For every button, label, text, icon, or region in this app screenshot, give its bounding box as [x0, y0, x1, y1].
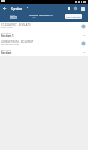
staticText: all	[83, 33, 86, 36]
staticText: LOREM IPSUM - DOLORSIT consectetur adip	[1, 40, 34, 46]
staticText: VIEW REPORT	[66, 15, 82, 18]
button[interactable]: sub head Section 1	[0, 30, 88, 39]
button[interactable]: More options	[79, 5, 86, 12]
button[interactable]: Navigate up	[0, 4, 9, 13]
button[interactable]: Refresh	[72, 5, 79, 12]
button[interactable]: LOREM IPSUM - DOLORSIT consectetur adip	[0, 39, 88, 47]
staticText: 2024 07/31	[10, 14, 18, 20]
staticText: Kyrobra	[11, 7, 23, 11]
staticText: Kyrobra Renderer v1 ver	[29, 13, 54, 19]
button[interactable]: sub head Section	[0, 47, 88, 56]
staticText: ST-20240907 - SLV5LA70 2024 10 05	[1, 23, 31, 29]
staticText: sub head Section 1	[1, 32, 14, 38]
button[interactable]: Documents	[65, 5, 72, 12]
button[interactable]: ST-20240907 - SLV5LA70 2024 10 05	[0, 22, 88, 30]
button[interactable]: VIEW REPORT	[65, 14, 82, 19]
staticText: all	[83, 50, 86, 53]
staticText: sub head Section	[1, 49, 12, 55]
